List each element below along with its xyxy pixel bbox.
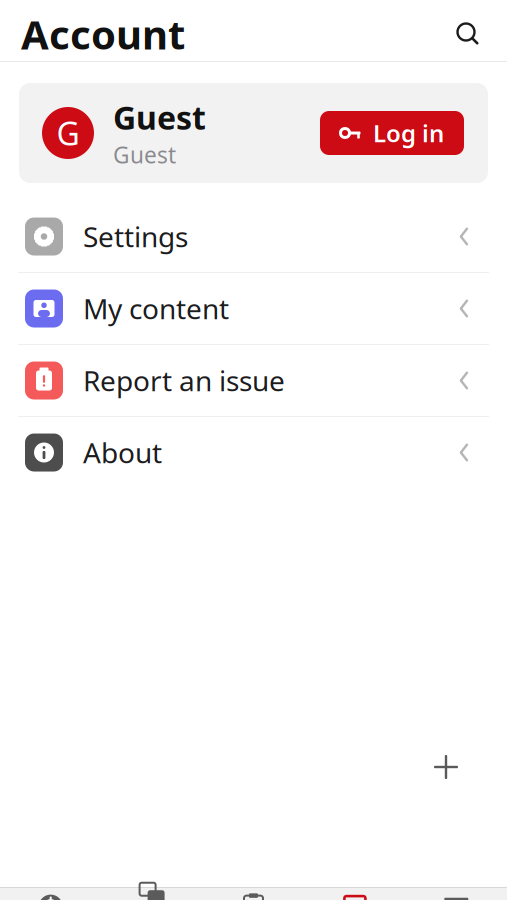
button[interactable]: Home: [0, 888, 101, 900]
button[interactable]: Report an issue: [18, 345, 489, 416]
button[interactable]: Community: [101, 888, 203, 900]
staticText: Account: [21, 7, 185, 60]
staticText: Report an issue: [83, 362, 285, 399]
staticText: Settings: [83, 218, 188, 255]
button[interactable]: Account: [304, 888, 406, 900]
staticText: Guest: [113, 96, 206, 139]
staticText: My content: [83, 290, 229, 327]
staticText: Guest: [113, 140, 176, 170]
button[interactable]: Log in: [320, 111, 464, 155]
staticText: G: [56, 112, 79, 154]
button[interactable]: My content: [18, 273, 489, 344]
button[interactable]: Menu: [406, 888, 507, 900]
button[interactable]: Resources: [203, 888, 304, 900]
staticText: About: [83, 434, 162, 471]
button[interactable]: Search: [445, 11, 491, 57]
button[interactable]: Add: [406, 727, 486, 807]
button[interactable]: Settings: [18, 201, 489, 272]
staticText: Log in: [373, 117, 444, 149]
button[interactable]: About: [18, 417, 489, 488]
